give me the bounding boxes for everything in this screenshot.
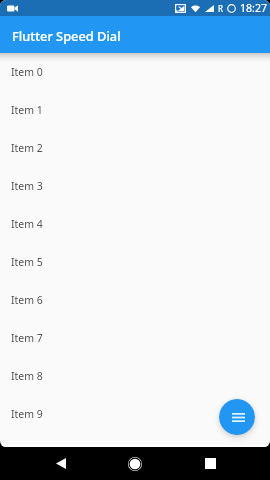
button[interactable]: Item 8: [0, 357, 270, 395]
staticText: Item 6: [11, 293, 43, 307]
staticText: Item 4: [11, 217, 43, 231]
staticText: Item 1: [11, 103, 43, 117]
staticText: Item 5: [11, 255, 43, 269]
staticText: Flutter Speed Dial: [12, 27, 121, 44]
button[interactable]: Home: [115, 447, 155, 480]
staticText: R: [218, 3, 223, 14]
button[interactable]: Item 1: [0, 91, 270, 129]
button[interactable]: Back: [41, 447, 81, 480]
button[interactable]: Item 4: [0, 205, 270, 243]
staticText: Item 3: [11, 179, 43, 193]
button[interactable]: Item 0: [0, 53, 270, 91]
staticText: Item 2: [11, 141, 43, 155]
button[interactable]: Recents: [190, 447, 230, 480]
staticText: Item 9: [11, 407, 43, 421]
button[interactable]: Item 9: [0, 395, 270, 433]
button[interactable]: Item 3: [0, 167, 270, 205]
button[interactable]: Item 2: [0, 129, 270, 167]
button[interactable]: Item 6: [0, 281, 270, 319]
staticText: Item 0: [11, 65, 43, 79]
button[interactable]: Item 5: [0, 243, 270, 281]
button[interactable]: Open speed dial: [219, 399, 255, 435]
staticText: Item 7: [11, 331, 43, 345]
staticText: Item 8: [11, 369, 43, 383]
button[interactable]: Item 7: [0, 319, 270, 357]
staticText: 18:27: [240, 1, 268, 15]
